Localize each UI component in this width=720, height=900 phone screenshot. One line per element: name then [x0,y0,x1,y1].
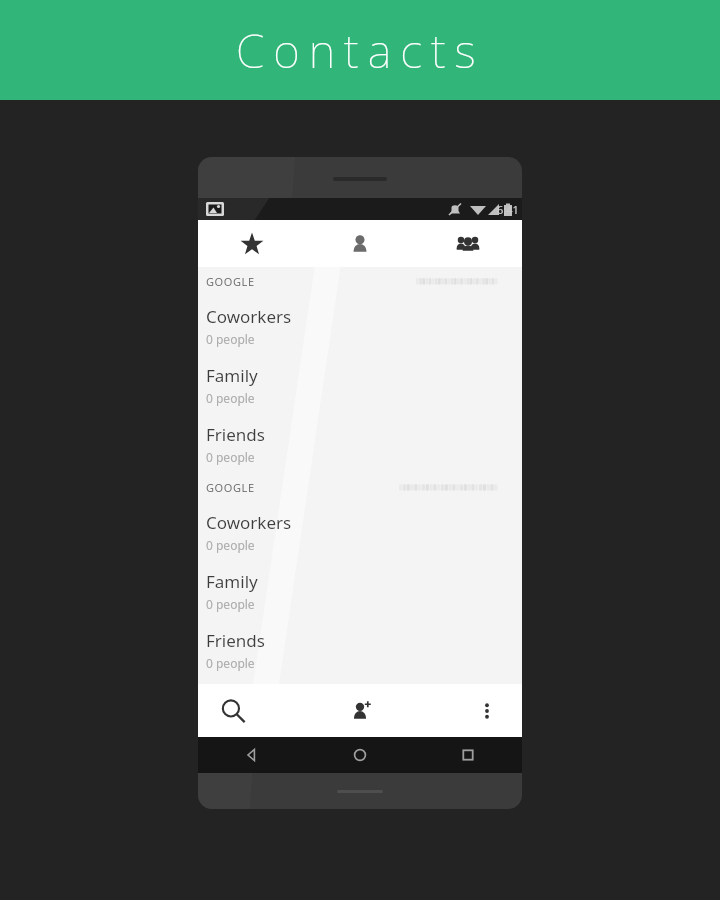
staticText: Coworkers [206,511,292,534]
staticText: Friends [206,423,265,446]
button[interactable]: Favorites [198,220,306,267]
button[interactable]: Recents [414,737,522,773]
staticText: Coworkers [206,305,292,328]
button[interactable]: Back [198,737,306,773]
button[interactable]: Friends [198,414,522,473]
staticText: Contacts [236,19,485,82]
button[interactable]: GOOGLE [198,473,522,502]
staticText: 0 people [206,449,255,465]
button[interactable]: GOOGLE [198,267,522,296]
staticText: Family [206,364,258,387]
staticText: 6:41 [497,202,519,217]
button[interactable]: Home [306,737,414,773]
button[interactable]: Coworkers [198,296,522,355]
button[interactable]: Groups [414,220,522,267]
button[interactable]: Add contact [268,684,452,737]
staticText: Family [206,570,258,593]
button[interactable]: Contacts [306,220,414,267]
button[interactable]: Family [198,355,522,414]
button[interactable]: Search [198,684,268,737]
button[interactable]: Coworkers [198,502,522,561]
staticText: 0 people [206,537,255,553]
button[interactable]: Friends [198,620,522,679]
staticText: 0 people [206,390,255,406]
staticText: 0 people [206,331,255,347]
staticText: 0 people [206,655,255,671]
staticText: GOOGLE [206,480,255,495]
staticText: GOOGLE [206,274,255,289]
button[interactable]: Family [198,561,522,620]
staticText: 0 people [206,596,255,612]
staticText: Friends [206,629,265,652]
button[interactable]: More options [452,684,522,737]
